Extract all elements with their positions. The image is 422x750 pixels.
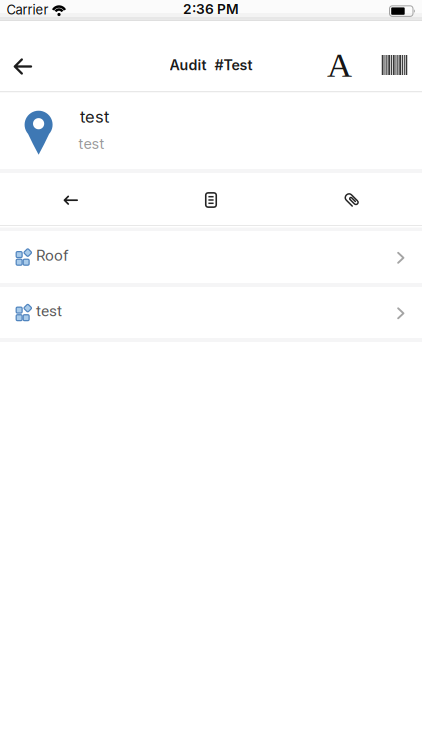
staticText: Audit #Test: [169, 56, 252, 74]
button[interactable]: [374, 45, 414, 85]
button[interactable]: test: [0, 287, 422, 338]
button[interactable]: A: [319, 43, 359, 87]
button[interactable]: [281, 173, 422, 225]
staticText: test: [36, 302, 62, 320]
button[interactable]: [141, 173, 281, 225]
staticText: Carrier: [6, 2, 48, 17]
staticText: 2:36 PM: [183, 1, 239, 17]
button[interactable]: [0, 173, 141, 225]
staticText: A: [327, 46, 352, 84]
staticText: Roof: [36, 247, 68, 265]
button[interactable]: [0, 46, 44, 86]
staticText: test: [80, 107, 109, 127]
button[interactable]: Roof: [0, 231, 422, 283]
staticText: test: [79, 135, 105, 152]
